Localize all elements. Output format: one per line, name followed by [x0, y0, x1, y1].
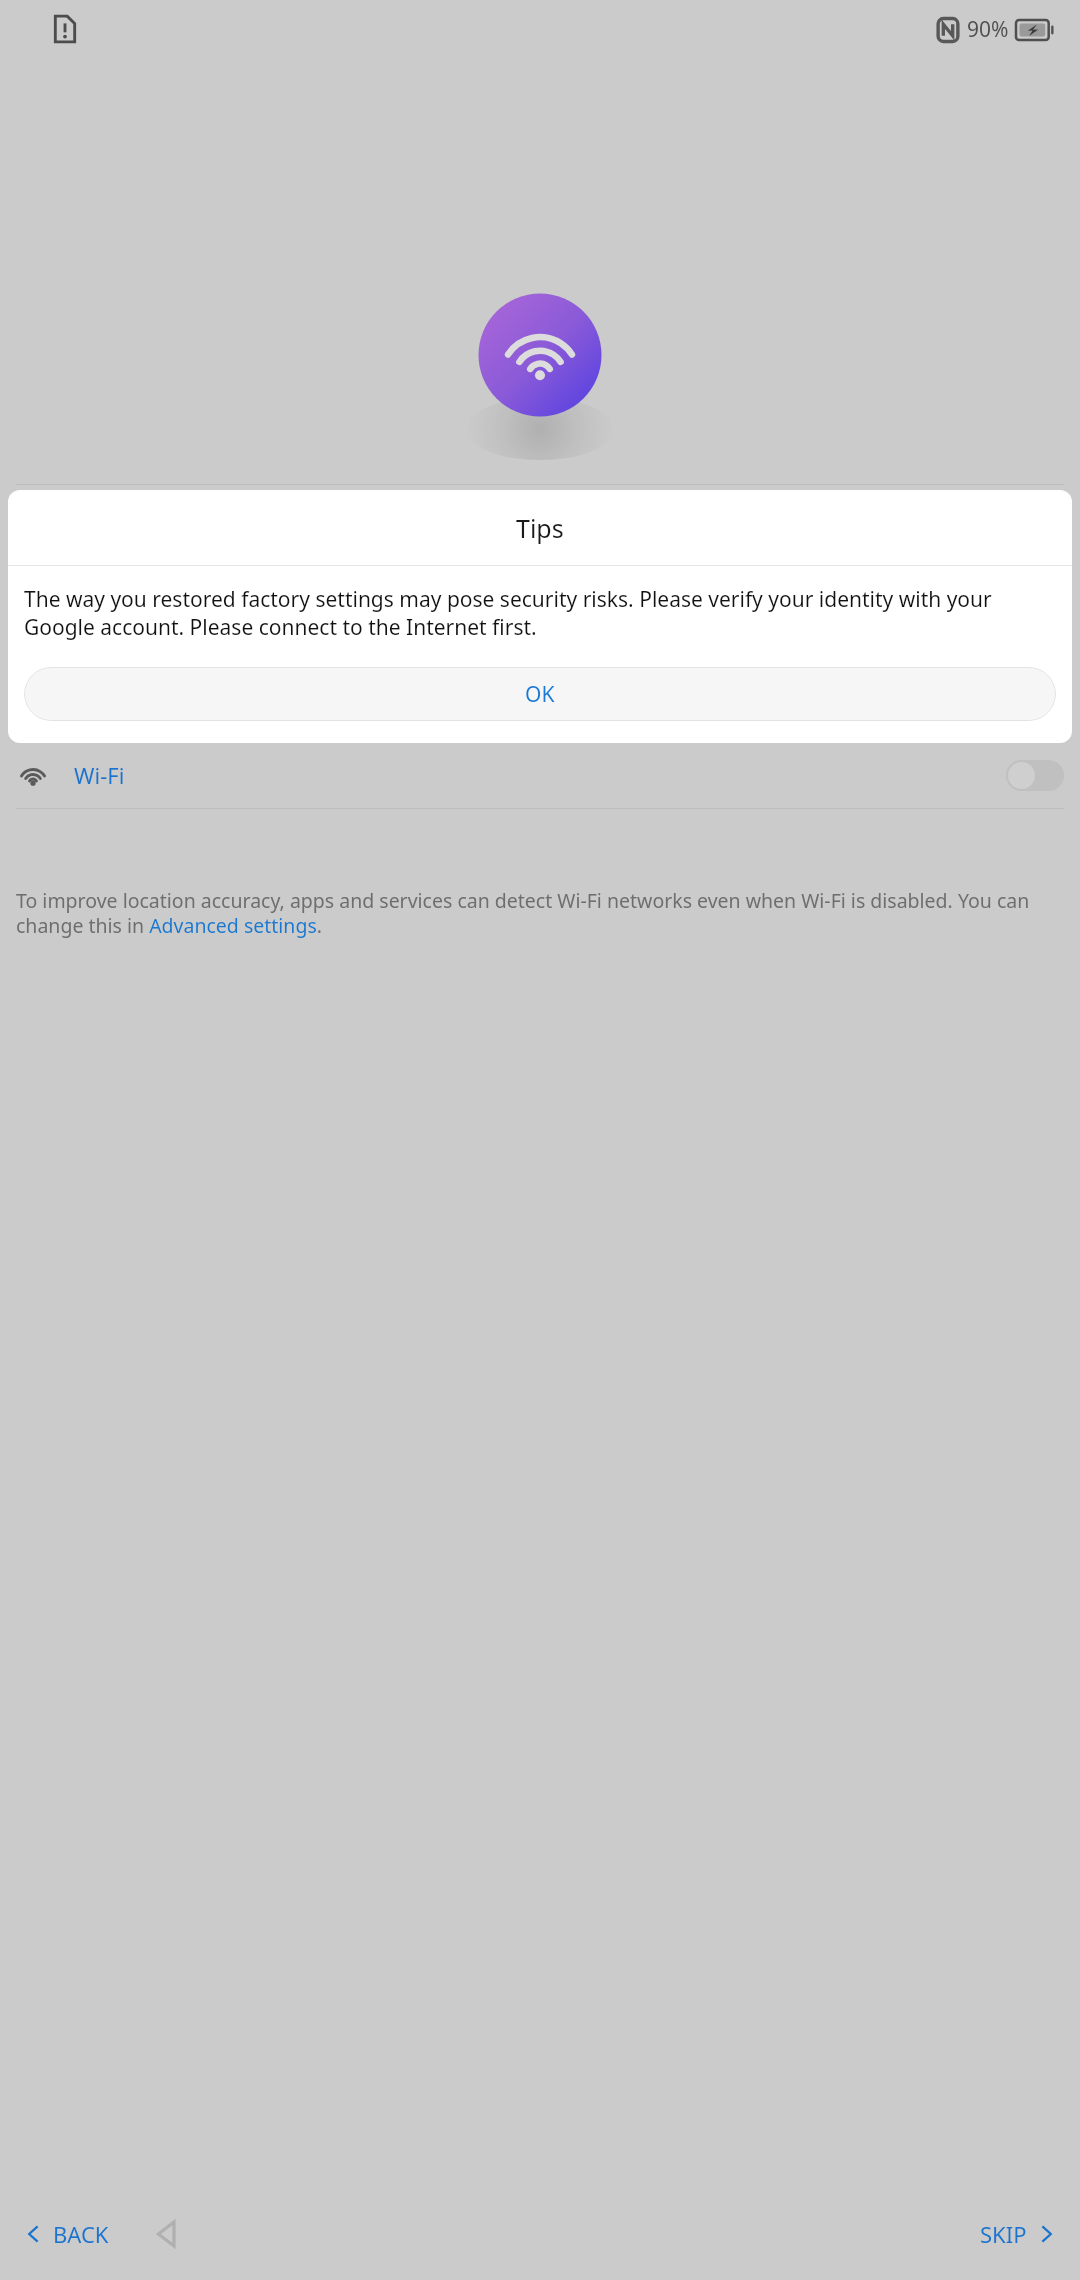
button[interactable]: Wi-Fi: [0, 742, 1080, 808]
button[interactable]: OK: [24, 667, 1056, 721]
button[interactable]: Back: [143, 2212, 187, 2256]
staticText: BACK: [53, 2219, 109, 2249]
button[interactable]: BACK: [0, 2209, 121, 2259]
button[interactable]: Wi-Fi toggle, off: [1006, 760, 1064, 791]
staticText: 90%: [967, 15, 1009, 44]
staticText: Tips: [516, 511, 564, 545]
staticText: The way you restored factory settings ma…: [24, 585, 1056, 641]
staticText: To improve location accuracy, apps and s…: [16, 887, 1064, 938]
staticText: Connect to a network: [394, 557, 686, 594]
button[interactable]: SKIP: [968, 2209, 1080, 2259]
staticText: SKIP: [980, 2219, 1027, 2249]
staticText: Wi-Fi: [74, 760, 125, 790]
staticText: OK: [525, 680, 555, 709]
